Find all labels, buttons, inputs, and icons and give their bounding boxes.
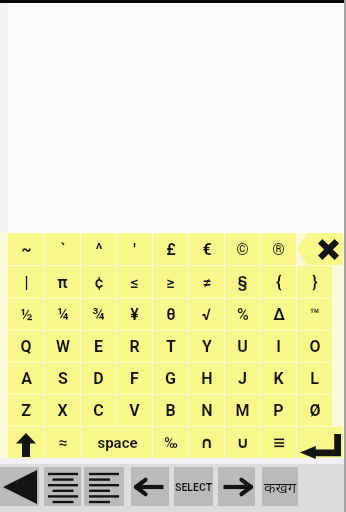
button[interactable]: M <box>225 395 260 426</box>
button[interactable]: D <box>81 363 116 394</box>
button[interactable]: Δ <box>261 299 296 330</box>
staticText: ≠ <box>202 273 212 292</box>
button[interactable]: ™ <box>297 299 332 330</box>
button[interactable]: ‰ <box>153 427 188 458</box>
staticText: © <box>236 240 249 259</box>
button[interactable]: SELECT <box>174 467 213 506</box>
button[interactable]: C <box>81 395 116 426</box>
button[interactable]: } <box>297 266 332 298</box>
button[interactable]: √ <box>189 299 224 330</box>
button[interactable]: B <box>153 395 188 426</box>
button[interactable]: R <box>117 331 152 362</box>
staticText: ` <box>60 240 66 259</box>
button[interactable]: ' <box>117 233 152 265</box>
button[interactable]: { <box>261 266 296 298</box>
button[interactable]: Shift <box>8 427 44 458</box>
staticText: ¥ <box>130 305 139 324</box>
staticText: ‰ <box>164 435 178 451</box>
button[interactable]: W <box>45 331 80 362</box>
button[interactable]: % <box>225 299 260 330</box>
button[interactable]: O <box>297 331 332 362</box>
button[interactable]: ¼ <box>45 299 80 330</box>
staticText: O <box>309 337 321 356</box>
button[interactable]: ≠ <box>189 266 224 298</box>
button[interactable]: Move right <box>218 467 255 506</box>
button[interactable]: π <box>45 266 80 298</box>
staticText: ≡ <box>272 433 286 452</box>
staticText: T <box>166 337 176 356</box>
button[interactable]: ≥ <box>153 266 188 298</box>
staticText: कखग <box>264 477 297 497</box>
button[interactable]: θ <box>153 299 188 330</box>
button[interactable]: space <box>82 427 152 458</box>
button[interactable]: Z <box>8 395 44 426</box>
button[interactable]: F <box>117 363 152 394</box>
staticText: ® <box>272 240 285 259</box>
staticText: F <box>130 369 139 388</box>
button[interactable]: H <box>189 363 224 394</box>
button[interactable]: § <box>225 266 260 298</box>
button[interactable]: | <box>8 266 44 298</box>
button[interactable]: ∩ <box>189 427 224 458</box>
staticText: S <box>58 369 68 388</box>
button[interactable]: Q <box>8 331 44 362</box>
button[interactable]: Align left <box>84 467 124 506</box>
button[interactable]: A <box>8 363 44 394</box>
button[interactable]: E <box>81 331 116 362</box>
staticText: G <box>165 369 176 388</box>
button[interactable]: ≈ <box>45 427 81 458</box>
button[interactable]: P <box>261 395 296 426</box>
button[interactable]: T <box>153 331 188 362</box>
button[interactable]: Backspace <box>297 233 343 265</box>
button[interactable]: ` <box>45 233 80 265</box>
staticText: X <box>57 401 68 420</box>
button[interactable]: © <box>225 233 260 265</box>
button[interactable]: V <box>117 395 152 426</box>
staticText: Z <box>21 401 31 420</box>
button[interactable]: Enter <box>297 427 343 458</box>
button[interactable]: K <box>261 363 296 394</box>
button[interactable]: I <box>261 331 296 362</box>
button[interactable]: Back <box>0 467 39 506</box>
button[interactable]: € <box>189 233 224 265</box>
button[interactable]: ¥ <box>117 299 152 330</box>
staticText: ≈ <box>58 433 68 452</box>
button[interactable]: N <box>189 395 224 426</box>
button[interactable]: ½ <box>8 299 44 330</box>
button[interactable]: कखग <box>262 467 298 506</box>
button[interactable]: ^ <box>81 233 116 265</box>
staticText: E <box>94 337 103 356</box>
button[interactable]: Ø <box>297 395 332 426</box>
button[interactable]: J <box>225 363 260 394</box>
staticText: { <box>276 273 282 292</box>
staticText: ™ <box>309 305 320 324</box>
button[interactable]: Move left <box>131 467 169 506</box>
button[interactable]: Y <box>189 331 224 362</box>
button[interactable]: ≡ <box>261 427 296 458</box>
staticText: I <box>276 337 281 356</box>
staticText: } <box>312 273 318 292</box>
button[interactable]: ~ <box>8 233 44 265</box>
staticText: P <box>273 401 284 420</box>
staticText: | <box>24 273 29 292</box>
staticText: SELECT <box>175 481 213 493</box>
button[interactable]: Align center <box>44 467 81 506</box>
button[interactable]: G <box>153 363 188 394</box>
button[interactable]: ® <box>261 233 296 265</box>
button[interactable]: ¢ <box>81 266 116 298</box>
staticText: ≤ <box>130 273 139 292</box>
button[interactable]: ∪ <box>225 427 260 458</box>
button[interactable]: S <box>45 363 80 394</box>
button[interactable]: £ <box>153 233 188 265</box>
staticText: ^ <box>95 240 103 259</box>
staticText: Δ <box>273 305 285 324</box>
button[interactable]: ¾ <box>81 299 116 330</box>
button[interactable]: X <box>45 395 80 426</box>
staticText: L <box>310 369 319 388</box>
staticText: ~ <box>21 240 32 259</box>
button[interactable]: L <box>297 363 332 394</box>
staticText: D <box>93 369 104 388</box>
button[interactable]: U <box>225 331 260 362</box>
button[interactable]: ≤ <box>117 266 152 298</box>
staticText: C <box>93 401 104 420</box>
